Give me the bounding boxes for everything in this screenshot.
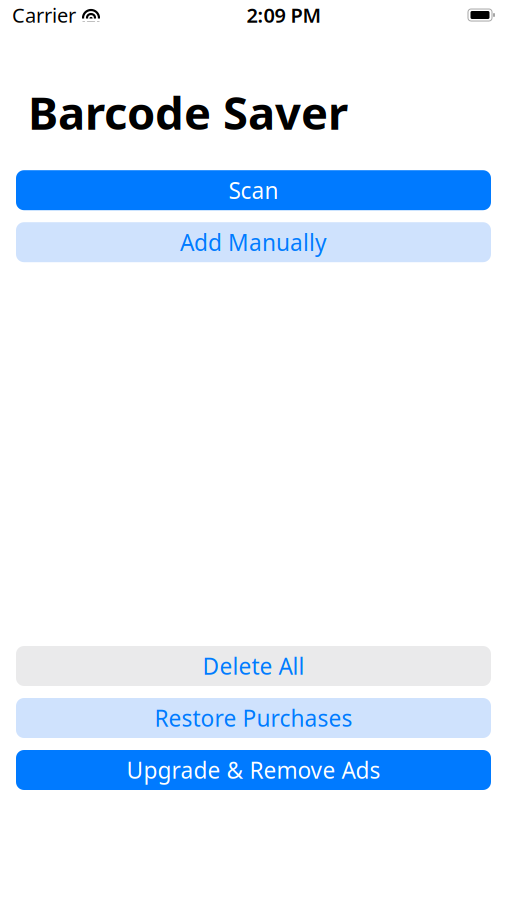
staticText: Scan (228, 175, 278, 205)
button[interactable]: Delete All (16, 646, 491, 686)
staticText: Upgrade & Remove Ads (126, 755, 380, 785)
button[interactable]: Restore Purchases (16, 698, 491, 738)
staticText: Barcode Saver (28, 82, 348, 142)
staticText: Restore Purchases (154, 703, 352, 733)
staticText: 2:09 PM (246, 2, 321, 28)
staticText: Add Manually (180, 227, 327, 257)
staticText: Carrier (12, 2, 76, 28)
button[interactable]: Add Manually (16, 222, 491, 262)
button[interactable]: Upgrade & Remove Ads (16, 750, 491, 790)
button[interactable]: Scan (16, 170, 491, 210)
staticText: Delete All (202, 651, 304, 681)
